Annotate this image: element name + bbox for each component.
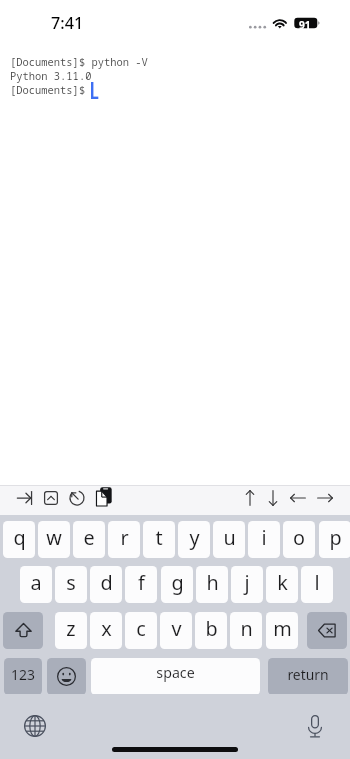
button[interactable]: 123 (4, 658, 42, 695)
staticText: a (30, 569, 42, 596)
staticText: w (46, 524, 62, 551)
staticText: z (66, 615, 76, 642)
button[interactable]: s (55, 566, 87, 603)
staticText: m (273, 615, 292, 642)
staticText: s (66, 569, 76, 596)
button[interactable]: c (125, 612, 157, 649)
button[interactable]: n (230, 612, 262, 649)
staticText: 7:41 (51, 12, 84, 34)
button[interactable]: i (248, 521, 280, 558)
button[interactable]: x (90, 612, 122, 649)
staticText: t (155, 524, 163, 551)
button[interactable]: b (195, 612, 227, 649)
staticText: f (138, 569, 145, 596)
button[interactable]: a (20, 566, 52, 603)
button[interactable]: Control (39, 486, 63, 515)
staticText: i (261, 524, 267, 551)
button[interactable]: g (161, 566, 193, 603)
button[interactable]: h (196, 566, 228, 603)
staticText: [Documents]$ python -V (10, 55, 148, 69)
button[interactable]: History (65, 486, 89, 515)
staticText: k (277, 569, 288, 596)
staticText: r (120, 524, 129, 551)
staticText: v (171, 615, 182, 642)
staticText: l (314, 569, 320, 596)
staticText: u (223, 524, 236, 551)
staticText: g (171, 569, 184, 596)
button[interactable] (47, 658, 86, 695)
staticText: j (244, 569, 250, 596)
staticText: n (240, 615, 253, 642)
button[interactable]: space (91, 658, 260, 695)
button[interactable] (3, 612, 43, 649)
button[interactable]: return (268, 658, 348, 695)
button[interactable]: Paste (92, 486, 116, 515)
button[interactable]: Change keyboard (17, 708, 53, 744)
staticText: b (205, 615, 218, 642)
staticText: space (156, 663, 195, 682)
button[interactable]: Arrow right (313, 486, 337, 515)
button[interactable]: v (160, 612, 192, 649)
staticText: d (100, 569, 113, 596)
button[interactable]: z (55, 612, 87, 649)
staticText: e (83, 524, 95, 551)
button[interactable]: l (301, 566, 333, 603)
button[interactable]: u (213, 521, 245, 558)
button[interactable]: e (73, 521, 105, 558)
staticText: [Documents]$ (10, 83, 92, 97)
button[interactable]: p (319, 521, 350, 558)
button[interactable]: Arrow down (261, 486, 285, 515)
button[interactable]: Arrow up (238, 486, 262, 515)
button[interactable]: Tab (13, 486, 37, 515)
staticText: Python 3.11.0 (10, 69, 92, 83)
staticText: return (287, 665, 329, 684)
button[interactable]: k (266, 566, 298, 603)
button[interactable]: t (143, 521, 175, 558)
staticText: 123 (11, 665, 35, 684)
button[interactable]: d (90, 566, 122, 603)
button[interactable]: o (283, 521, 315, 558)
button[interactable]: Dictate (297, 708, 333, 744)
button[interactable]: m (266, 612, 298, 649)
button[interactable]: y (178, 521, 210, 558)
staticText: 91 (299, 18, 311, 32)
staticText: q (13, 524, 26, 551)
staticText: p (329, 524, 342, 551)
staticText: y (189, 524, 200, 551)
button[interactable] (307, 612, 347, 649)
button[interactable]: r (108, 521, 140, 558)
button[interactable]: Arrow left (286, 486, 310, 515)
staticText: o (293, 524, 305, 551)
button[interactable]: j (231, 566, 263, 603)
button[interactable]: w (38, 521, 70, 558)
button[interactable]: q (3, 521, 35, 558)
staticText: x (101, 615, 112, 642)
button[interactable]: f (125, 566, 157, 603)
staticText: h (206, 569, 219, 596)
staticText: c (136, 615, 146, 642)
